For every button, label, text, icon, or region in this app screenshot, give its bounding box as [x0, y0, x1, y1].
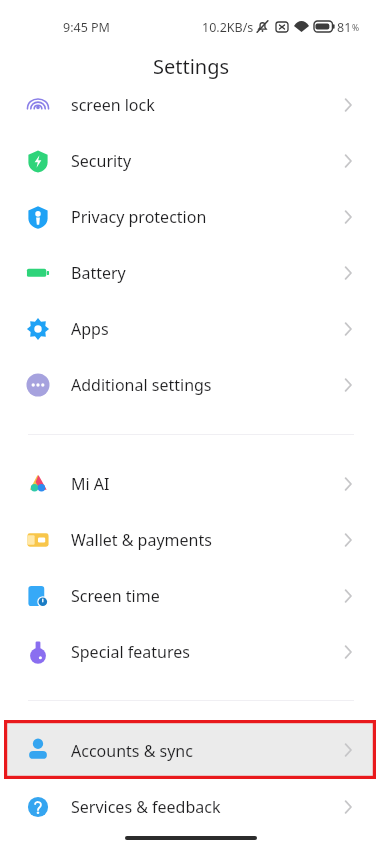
staticText: Privacy protection	[71, 206, 207, 228]
button[interactable]: Additional settings	[0, 357, 382, 413]
other: Accounts and sync	[26, 737, 50, 761]
staticText: Battery	[71, 262, 126, 284]
other: Screen time	[26, 584, 50, 608]
other: Services and feedback	[26, 795, 50, 819]
staticText: 81	[337, 19, 352, 36]
button[interactable]: Screen time	[0, 568, 382, 624]
staticText: screen lock	[71, 94, 155, 116]
other: Privacy protection	[26, 205, 50, 229]
staticText: Security	[71, 150, 132, 172]
other: Battery	[26, 261, 50, 285]
button[interactable]: Wallet and payments	[0, 512, 382, 568]
button[interactable]: Accounts and sync	[6, 722, 374, 777]
other: Additional settings	[26, 373, 50, 397]
button[interactable]: Security	[0, 133, 382, 189]
other: Mi AI	[26, 472, 50, 496]
button[interactable]: Services and feedback	[0, 779, 382, 835]
other: Screen lock	[26, 93, 50, 117]
button[interactable]: Apps	[0, 301, 382, 357]
staticText: Settings	[153, 53, 230, 80]
staticText: 9:45 PM	[63, 19, 110, 36]
staticText: Apps	[71, 318, 109, 340]
button[interactable]: Privacy protection	[0, 189, 382, 245]
staticText: %	[352, 22, 360, 34]
staticText: Accounts & sync	[71, 740, 193, 762]
staticText: Special features	[71, 641, 190, 663]
staticText: Screen time	[71, 585, 160, 607]
other: Wallet and payments	[26, 528, 50, 552]
other: Security	[26, 149, 50, 173]
other: Apps	[26, 317, 50, 341]
staticText: Services & feedback	[71, 796, 221, 818]
button[interactable]: Mi AI	[0, 456, 382, 512]
button[interactable]: Special features	[0, 624, 382, 680]
staticText: Additional settings	[71, 374, 212, 396]
staticText: Wallet & payments	[71, 529, 212, 551]
staticText: Mi AI	[71, 473, 110, 495]
button[interactable]: Battery	[0, 245, 382, 301]
other: Special features	[26, 640, 50, 664]
staticText: 10.2KB/s	[202, 19, 254, 36]
button[interactable]: Screen lock	[0, 77, 382, 133]
